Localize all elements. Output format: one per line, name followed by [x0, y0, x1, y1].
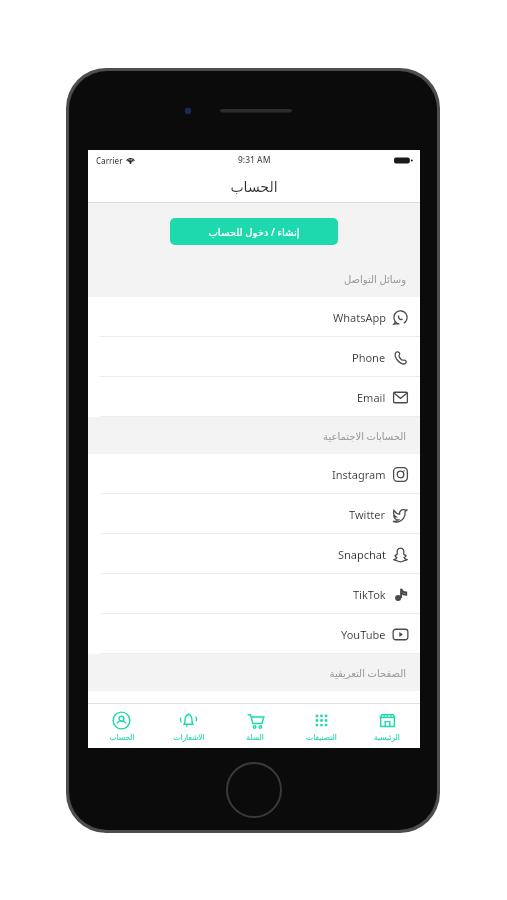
- staticText: 9:31 AM: [238, 154, 271, 166]
- button[interactable]: WhatsApp: [88, 297, 420, 337]
- button[interactable]: Email: [88, 377, 420, 417]
- staticText: إنشاء / دخول للحساب: [208, 225, 300, 239]
- button[interactable]: Phone: [88, 337, 420, 377]
- staticText: السلة: [246, 733, 264, 742]
- staticText: الرئيسية: [374, 733, 400, 742]
- staticText: الصفحات التعريفية: [329, 666, 406, 680]
- button[interactable]: Snapchat: [88, 534, 420, 574]
- button[interactable]: إنشاء / دخول للحساب: [170, 218, 338, 245]
- staticText: Email: [357, 390, 386, 405]
- button[interactable]: YouTube: [88, 614, 420, 654]
- button[interactable]: TikTok: [88, 574, 420, 614]
- button[interactable]: Twitter: [88, 494, 420, 534]
- button[interactable]: الحساب: [88, 704, 155, 748]
- staticText: الحسابات الاجتماعية: [323, 429, 406, 443]
- staticText: الاشعارات: [173, 733, 205, 742]
- staticText: TikTok: [353, 587, 386, 602]
- staticText: وسائل التواصل: [343, 272, 406, 286]
- staticText: WhatsApp: [333, 310, 386, 325]
- staticText: Carrier: [96, 155, 123, 166]
- staticText: Snapchat: [338, 547, 386, 562]
- staticText: التصنيفات: [306, 733, 337, 742]
- button[interactable]: التصنيفات: [288, 704, 354, 748]
- staticText: Instagram: [332, 467, 386, 482]
- staticText: الحساب: [230, 179, 278, 195]
- staticText: Phone: [352, 350, 386, 365]
- staticText: YouTube: [341, 627, 386, 642]
- button[interactable]: Instagram: [88, 454, 420, 494]
- button[interactable]: السلة: [222, 704, 288, 748]
- button[interactable]: الاشعارات: [155, 704, 222, 748]
- staticText: الحساب: [109, 733, 135, 742]
- button[interactable]: الرئيسية: [354, 704, 420, 748]
- staticText: Twitter: [349, 507, 386, 522]
